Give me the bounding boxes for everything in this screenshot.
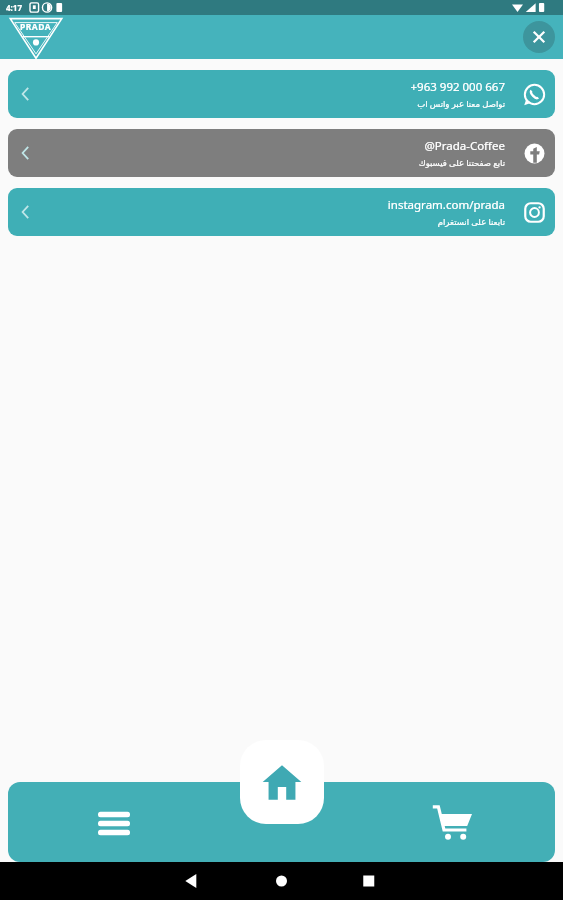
button[interactable]: Home: [240, 740, 324, 824]
staticText: instagram.com/prada: [387, 197, 505, 213]
button[interactable]: @Prada-Coffee: [8, 129, 555, 177]
button[interactable]: Prada logo: [8, 16, 64, 60]
staticText: تابع صفحتنا على فيسبوك: [418, 157, 505, 169]
button[interactable]: Cart: [423, 793, 481, 851]
staticText: @Prada-Coffee: [424, 138, 505, 154]
staticText: PRADA: [20, 21, 52, 33]
button[interactable]: +963 992 000 667: [8, 70, 555, 118]
staticText: 4:17: [6, 2, 22, 13]
button[interactable]: Menu: [86, 794, 142, 850]
button[interactable]: Close: [523, 21, 555, 53]
button[interactable]: instagram.com/prada: [8, 188, 555, 236]
staticText: +963 992 000 667: [410, 79, 505, 95]
staticText: تواصل معنا عبر واتس اب: [417, 98, 505, 110]
staticText: تابعنا على انستغرام: [437, 216, 505, 228]
